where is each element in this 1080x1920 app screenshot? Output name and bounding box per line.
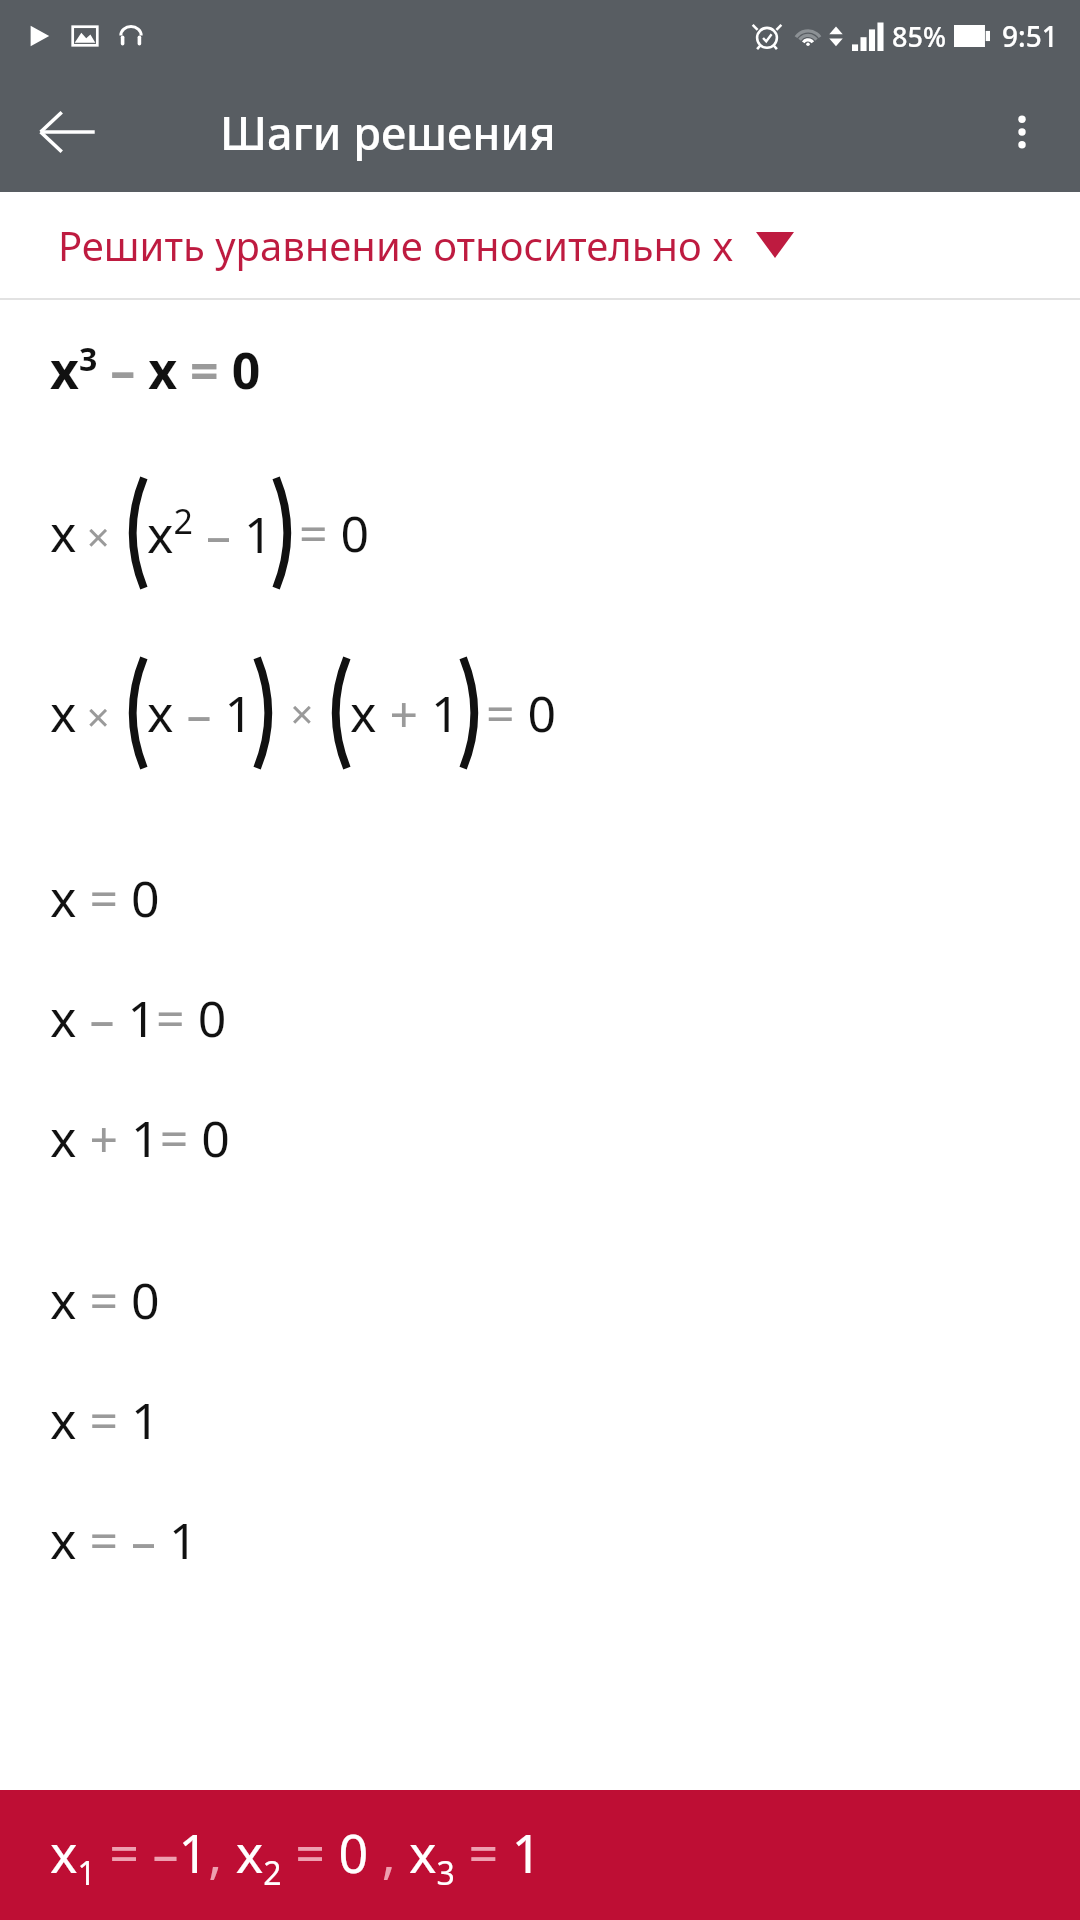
- staticText: x = 1: [50, 1386, 160, 1454]
- staticText: ×: [280, 686, 324, 740]
- staticText: Решить уравнение относительно x: [58, 218, 734, 272]
- staticText: 85%: [892, 18, 946, 55]
- staticText: x – 1= 0: [50, 984, 227, 1052]
- staticText: x + 1= 0: [50, 1104, 230, 1172]
- button[interactable]: Решить уравнение относительно x: [0, 192, 1080, 298]
- staticText: x = – 1: [50, 1506, 198, 1574]
- staticText: x – 1: [147, 679, 254, 747]
- staticText: 9:51: [1002, 17, 1058, 55]
- staticText: x1 = –1, x2 = 0 , x3 = 1: [50, 1817, 542, 1894]
- staticText: x + 1: [350, 679, 460, 747]
- staticText: Шаги решения: [220, 102, 556, 163]
- button[interactable]: x1 = –1, x2 = 0 , x3 = 1: [0, 1790, 1080, 1920]
- staticText: x3 – x = 0: [50, 336, 261, 404]
- staticText: = 0: [299, 499, 370, 567]
- staticText: x2 – 1: [147, 498, 273, 568]
- staticText: x ×: [50, 679, 121, 747]
- staticText: x ×: [50, 499, 121, 567]
- button[interactable]: Back: [34, 99, 100, 165]
- staticText: x = 0: [50, 1266, 160, 1334]
- staticText: = 0: [486, 679, 557, 747]
- button[interactable]: More options: [990, 100, 1054, 164]
- staticText: x = 0: [50, 864, 160, 932]
